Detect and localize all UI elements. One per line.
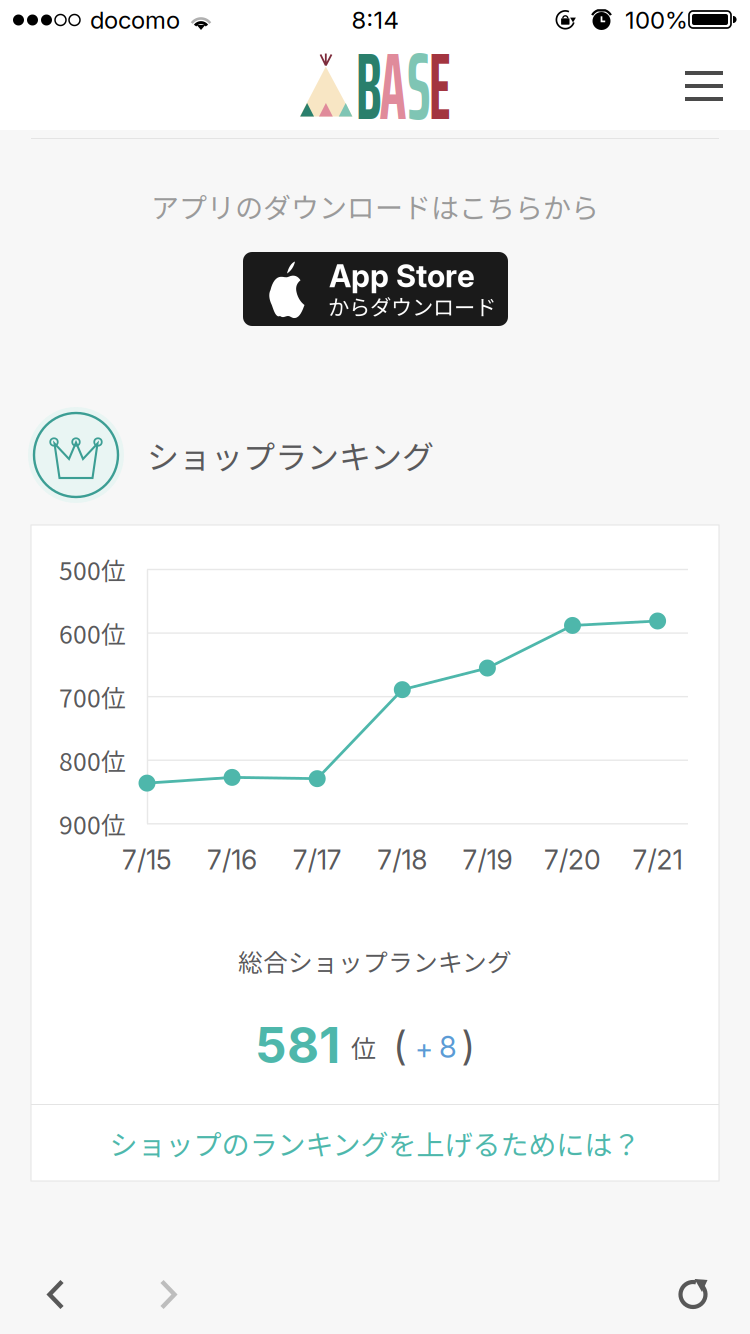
staticText: からダウンロード (328, 291, 496, 321)
staticText: ( (394, 1021, 406, 1069)
staticText: アプリのダウンロードはこちらから (151, 186, 599, 226)
staticText: 500位 (59, 552, 126, 587)
staticText: B (349, 11, 389, 160)
staticText: 7/17 (293, 844, 342, 876)
staticText: 7/19 (462, 844, 512, 876)
staticText: 7/15 (122, 844, 172, 876)
staticText: 総合ショップランキング (238, 943, 512, 979)
staticText: 7/21 (633, 844, 683, 876)
button[interactable]: App Store (243, 252, 508, 326)
staticText: + (415, 1032, 433, 1066)
staticText: 8:14 (351, 5, 398, 34)
staticText: docomo (90, 5, 180, 34)
button[interactable]: Menu (660, 42, 748, 130)
staticText: 位 (351, 1029, 376, 1065)
staticText: ) (462, 1021, 474, 1069)
staticText: 100% (625, 5, 688, 34)
staticText: 8 (439, 1029, 457, 1065)
staticText: App Store (329, 257, 475, 294)
button[interactable]: Forward (112, 1255, 224, 1334)
button[interactable]: Back (0, 1255, 112, 1334)
staticText: 7/20 (544, 844, 601, 876)
staticText: 600位 (59, 615, 126, 651)
staticText: E (423, 11, 457, 160)
button[interactable]: Reload (638, 1255, 750, 1334)
staticText: A (372, 11, 413, 160)
staticText: 800位 (59, 742, 126, 778)
staticText: 7/18 (377, 844, 427, 876)
staticText: ショップランキング (147, 432, 434, 478)
staticText: ショップのランキングを上げるためには？ (109, 1123, 640, 1163)
staticText: 900位 (59, 806, 126, 842)
staticText: S (401, 11, 437, 160)
staticText: 7/16 (207, 844, 257, 876)
button[interactable]: ショップのランキングを上げるためには？ (31, 1105, 719, 1181)
staticText: 700位 (59, 679, 126, 714)
staticText: 581 (255, 1015, 340, 1075)
